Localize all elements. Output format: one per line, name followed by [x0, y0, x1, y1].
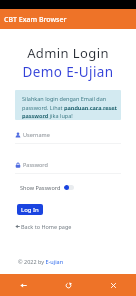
button[interactable]: Show Password [20, 184, 74, 191]
staticText: Password [23, 161, 48, 168]
staticText: Username [23, 131, 50, 138]
staticText: Admin Login [0, 44, 136, 62]
staticText: Back to Home page [21, 223, 72, 230]
button[interactable]: Reload [46, 274, 91, 296]
button[interactable]: Close [91, 274, 136, 296]
staticText: Show Password [20, 184, 61, 191]
button[interactable]: Back to Home page [15, 223, 72, 230]
button[interactable]: Log In [17, 204, 43, 215]
staticText: Log In [21, 206, 39, 214]
staticText: © 2022 by E-ujian [18, 258, 64, 265]
button[interactable]: Back [0, 274, 46, 296]
staticText: CBT Exam Browser [4, 15, 67, 25]
staticText: Silahkan login dengan Email dan password… [22, 95, 117, 119]
staticText: Demo E-Ujian [0, 63, 136, 81]
